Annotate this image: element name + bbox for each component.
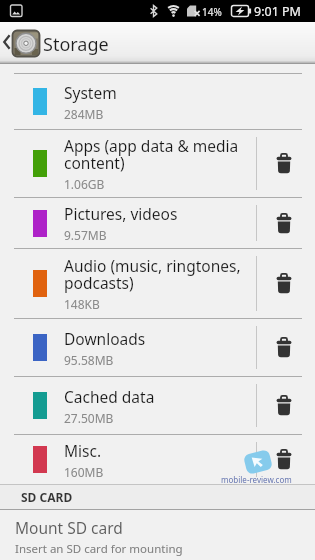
button[interactable] <box>257 435 315 484</box>
staticText: 27.50MB <box>64 410 114 426</box>
staticText: SD CARD <box>21 489 73 505</box>
staticText: mobile-review.com <box>221 474 292 485</box>
button[interactable] <box>257 249 315 318</box>
button[interactable]: Downloads <box>0 319 315 376</box>
staticText: Audio (music, ringtones, podcasts) <box>64 255 241 293</box>
staticText: 95.58MB <box>64 352 114 368</box>
staticText: 9:01 PM <box>254 3 301 20</box>
button[interactable] <box>257 198 315 248</box>
button[interactable]: Pictures, videos <box>0 198 315 248</box>
button[interactable] <box>257 319 315 376</box>
button[interactable]: Audio (music, ringtones, podcasts) <box>0 249 315 318</box>
staticText: 1.06GB <box>64 176 105 192</box>
staticText: 9.57MB <box>64 227 107 243</box>
button[interactable] <box>257 130 315 197</box>
staticText: 14% <box>202 5 222 19</box>
staticText: Storage <box>43 32 109 57</box>
staticText: 284MB <box>64 106 104 122</box>
staticText: Apps (app data & media content) <box>64 135 239 173</box>
staticText: System <box>64 82 117 103</box>
button[interactable]: Mount SD card <box>0 510 315 560</box>
button[interactable]: Apps (app data & media content) <box>0 130 315 197</box>
staticText: 160MB <box>64 464 104 480</box>
staticText: Pictures, videos <box>64 203 178 224</box>
staticText: Insert an SD card for mounting <box>15 541 183 557</box>
button[interactable]: Storage <box>0 22 315 64</box>
staticText: Downloads <box>64 328 146 349</box>
staticText: Mount SD card <box>15 517 123 538</box>
button[interactable]: Cached data <box>0 377 315 434</box>
button[interactable] <box>257 377 315 434</box>
staticText: 148KB <box>64 296 100 312</box>
staticText: Misc. <box>64 440 102 461</box>
button[interactable]: System <box>0 74 315 129</box>
button[interactable]: Misc. <box>0 435 315 484</box>
staticText: Cached data <box>64 386 155 407</box>
